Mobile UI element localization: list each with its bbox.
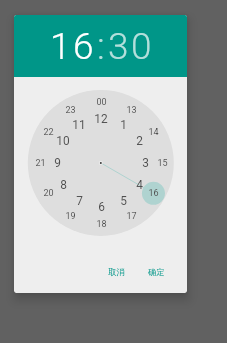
- staticText: 20: [43, 188, 54, 199]
- staticText: 3: [142, 156, 149, 170]
- staticText: 2: [136, 134, 143, 148]
- staticText: 15: [157, 158, 168, 169]
- staticText: 确定: [148, 267, 165, 278]
- button[interactable]: 16: [50, 25, 97, 68]
- staticText: 00: [96, 97, 107, 108]
- staticText: 1: [120, 118, 127, 132]
- staticText: 6: [98, 200, 105, 214]
- button[interactable]: 确定: [144, 263, 169, 282]
- staticText: 11: [72, 118, 86, 132]
- staticText: 4: [136, 178, 143, 192]
- staticText: 21: [35, 158, 46, 169]
- staticText: 22: [43, 127, 54, 138]
- staticText: 16: [148, 188, 159, 199]
- staticText: 13: [126, 105, 137, 116]
- staticText: 14: [148, 127, 159, 138]
- button[interactable]: 取消: [104, 263, 129, 282]
- staticText: 8: [60, 178, 67, 192]
- staticText: 10: [56, 134, 70, 148]
- staticText: 7: [76, 194, 83, 208]
- button[interactable]: 30: [108, 25, 155, 68]
- staticText: 12: [94, 112, 108, 126]
- staticText: 5: [120, 194, 127, 208]
- staticText: 18: [96, 219, 107, 230]
- staticText: :: [97, 25, 108, 68]
- staticText: 17: [126, 211, 137, 222]
- staticText: 19: [65, 211, 76, 222]
- staticText: 23: [65, 105, 76, 116]
- staticText: 取消: [108, 267, 125, 278]
- staticText: 9: [54, 156, 61, 170]
